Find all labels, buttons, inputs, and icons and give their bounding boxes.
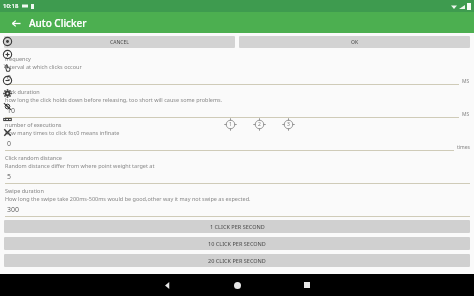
button[interactable]: Hide: [0, 100, 14, 113]
staticText: Click random distance: [5, 154, 62, 161]
staticText: MS: [462, 111, 470, 118]
button[interactable]: Sliders: [0, 113, 14, 126]
button[interactable]: Tap gesture: [0, 61, 14, 74]
button[interactable]: 10 CLICK PER SECOND: [4, 237, 470, 250]
staticText: Swipe duration: [5, 187, 44, 194]
staticText: 1: [229, 121, 232, 128]
staticText: times: [457, 144, 470, 151]
staticText: 0: [7, 139, 12, 149]
staticText: OK: [351, 39, 359, 46]
button[interactable]: Recents: [295, 274, 319, 296]
staticText: how many times to click for,0 means infi…: [5, 129, 120, 136]
staticText: click duration: [5, 88, 40, 95]
staticText: interval at which clicks occour: [5, 63, 82, 70]
staticText: 2: [258, 121, 261, 128]
staticText: 10 CLICK PER SECOND: [208, 240, 266, 247]
staticText: 5: [7, 172, 12, 182]
button[interactable]: Add point: [0, 48, 14, 61]
staticText: 20 CLICK PER SECOND: [208, 257, 266, 264]
button[interactable]: Back: [8, 15, 24, 31]
button[interactable]: 1 CLICK PER SECOND: [4, 220, 470, 233]
staticText: 10: [7, 106, 16, 116]
staticText: CANCEL: [110, 39, 129, 46]
button[interactable]: 20 CLICK PER SECOND: [4, 254, 470, 267]
staticText: 300: [7, 205, 20, 215]
staticText: Auto Clicker: [29, 16, 87, 30]
button[interactable]: CANCEL: [4, 36, 235, 48]
staticText: Random distance differ from where point …: [5, 162, 155, 169]
button[interactable]: Home: [225, 274, 249, 296]
staticText: 0: [7, 73, 12, 83]
staticText: number of executions: [5, 121, 62, 128]
staticText: MS: [462, 78, 470, 85]
button[interactable]: Remove point: [0, 74, 14, 87]
button[interactable]: Close: [0, 126, 14, 139]
staticText: 10:18: [3, 2, 19, 10]
staticText: frequency: [5, 55, 31, 62]
staticText: how long the click holds down before rel…: [5, 96, 223, 103]
staticText: 1 CLICK PER SECOND: [210, 223, 265, 230]
button[interactable]: Back: [155, 274, 179, 296]
staticText: How long the swipe take 200ms-500ms woul…: [5, 195, 251, 202]
button[interactable]: Record: [0, 35, 14, 48]
button[interactable]: Settings: [0, 87, 14, 100]
staticText: 3: [287, 121, 290, 128]
button[interactable]: OK: [239, 36, 470, 48]
